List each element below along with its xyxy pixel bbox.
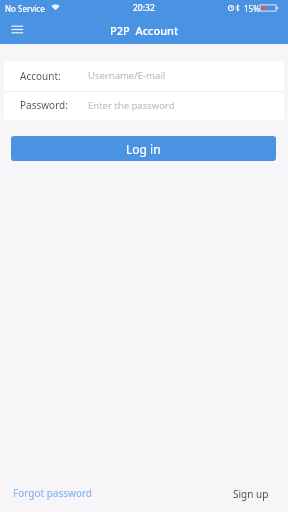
- staticText: Enter the password: [88, 99, 175, 112]
- staticText: 15%: [244, 3, 260, 14]
- button[interactable]: Account:: [4, 62, 284, 91]
- button[interactable]: Log in: [11, 136, 276, 161]
- button[interactable]: Sign up: [227, 483, 275, 505]
- staticText: Log in: [126, 141, 161, 157]
- staticText: 20:32: [133, 2, 155, 14]
- staticText: Forgot password: [13, 486, 93, 500]
- staticText: P2P Account: [110, 23, 179, 38]
- button[interactable]: Password:: [4, 92, 284, 120]
- staticText: Password:: [20, 98, 68, 112]
- staticText: No Service: [5, 3, 45, 14]
- button[interactable]: Forgot password: [7, 482, 99, 504]
- staticText: Sign up: [233, 487, 269, 501]
- button[interactable]: Menu: [4, 18, 29, 42]
- staticText: Username/E-mail: [88, 69, 166, 82]
- staticText: Account:: [20, 69, 61, 83]
